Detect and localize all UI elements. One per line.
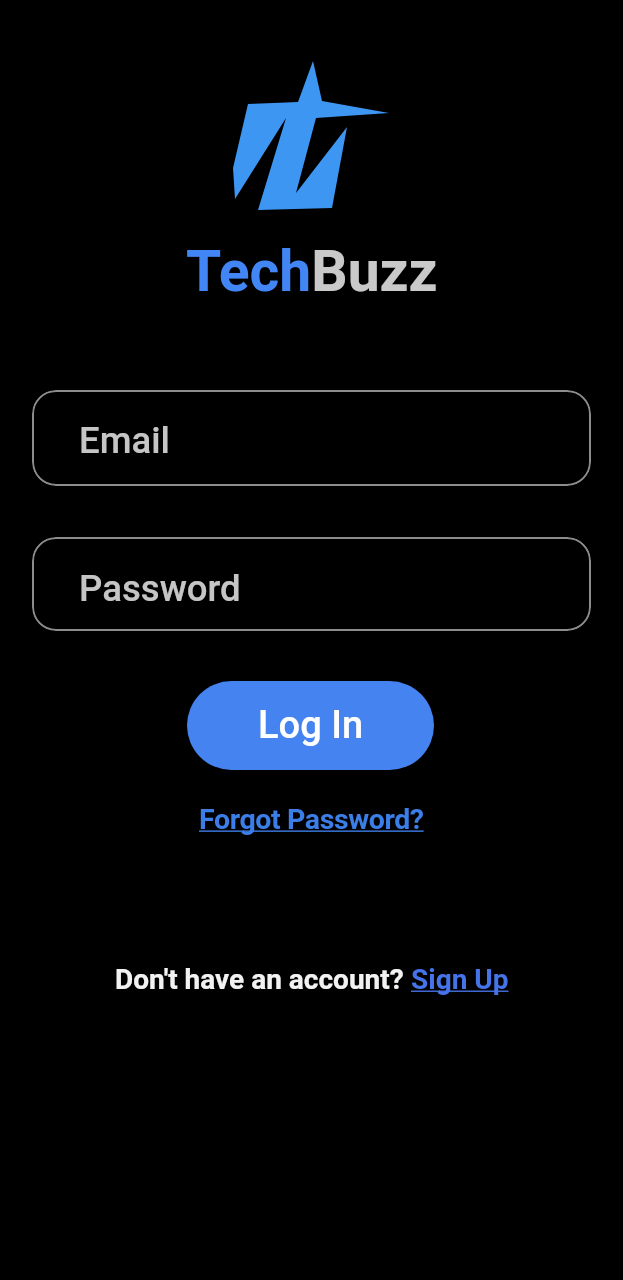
staticText: Email	[79, 419, 170, 462]
button[interactable]: Forgot Password?	[199, 803, 424, 836]
staticText: Password	[79, 567, 241, 610]
staticText: Don't have an account?	[115, 963, 411, 996]
button[interactable]: Email	[32, 390, 591, 486]
staticText: Log In	[258, 703, 364, 748]
staticText: TechBuzz	[186, 238, 438, 304]
button[interactable]: Password	[32, 537, 591, 631]
button[interactable]: Sign Up	[411, 963, 509, 996]
button[interactable]: Log In	[187, 681, 434, 770]
